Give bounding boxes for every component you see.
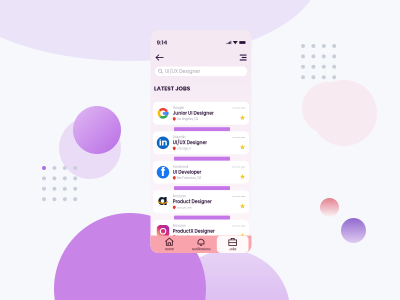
- staticText: UI/UX Designer: [208, 182, 349, 208]
- button[interactable]: UI/UX Designer: [167, 176, 400, 214]
- staticText: LATEST JOBS: [164, 248, 309, 280]
- staticText: 9:14: [174, 64, 217, 96]
- button[interactable]: Back: [164, 118, 209, 162]
